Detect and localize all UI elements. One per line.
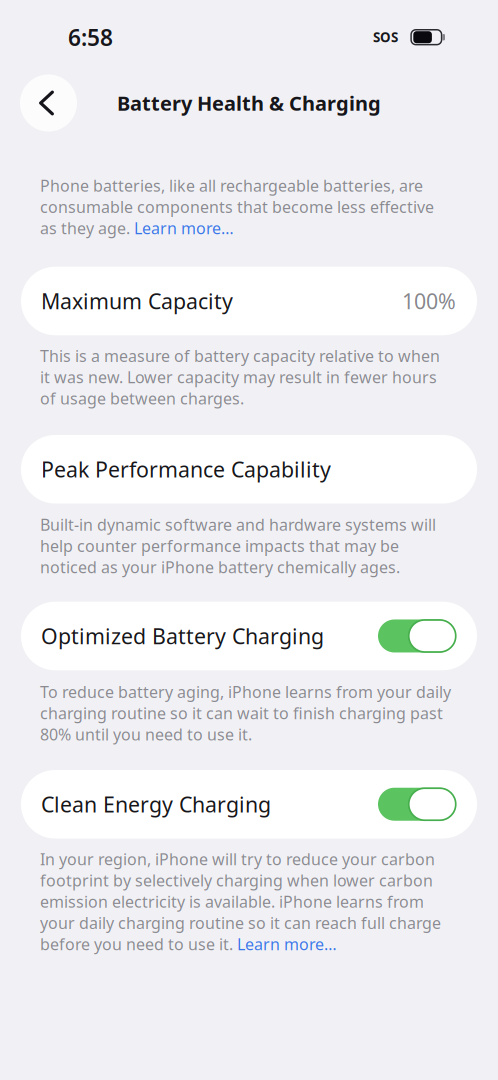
staticText: 6:58 (68, 22, 113, 52)
staticText: Built-in dynamic software and hardware s… (40, 514, 436, 578)
button[interactable]: Optimized Battery Charging (21, 602, 477, 670)
staticText: Clean Energy Charging (41, 790, 271, 818)
staticText: To reduce battery aging, iPhone learns f… (40, 681, 451, 745)
staticText: 100% (402, 287, 456, 315)
staticText: Learn more… (134, 217, 234, 239)
staticText: Optimized Battery Charging (41, 622, 324, 650)
staticText: Phone batteries, like all rechargeable b… (40, 175, 434, 239)
staticText: Learn more… (237, 933, 337, 955)
staticText: SOS (373, 28, 398, 46)
button[interactable]: Back (20, 74, 77, 131)
staticText: In your region, iPhone will try to reduc… (40, 848, 441, 955)
staticText: Maximum Capacity (41, 287, 233, 315)
button[interactable]: Peak Performance Capability (21, 435, 477, 503)
staticText: Battery Health & Charging (117, 90, 381, 116)
button[interactable]: Maximum Capacity (21, 267, 477, 335)
button[interactable]: Clean Energy Charging (21, 770, 477, 838)
staticText: This is a measure of battery capacity re… (40, 345, 440, 409)
staticText: Peak Performance Capability (41, 455, 331, 483)
